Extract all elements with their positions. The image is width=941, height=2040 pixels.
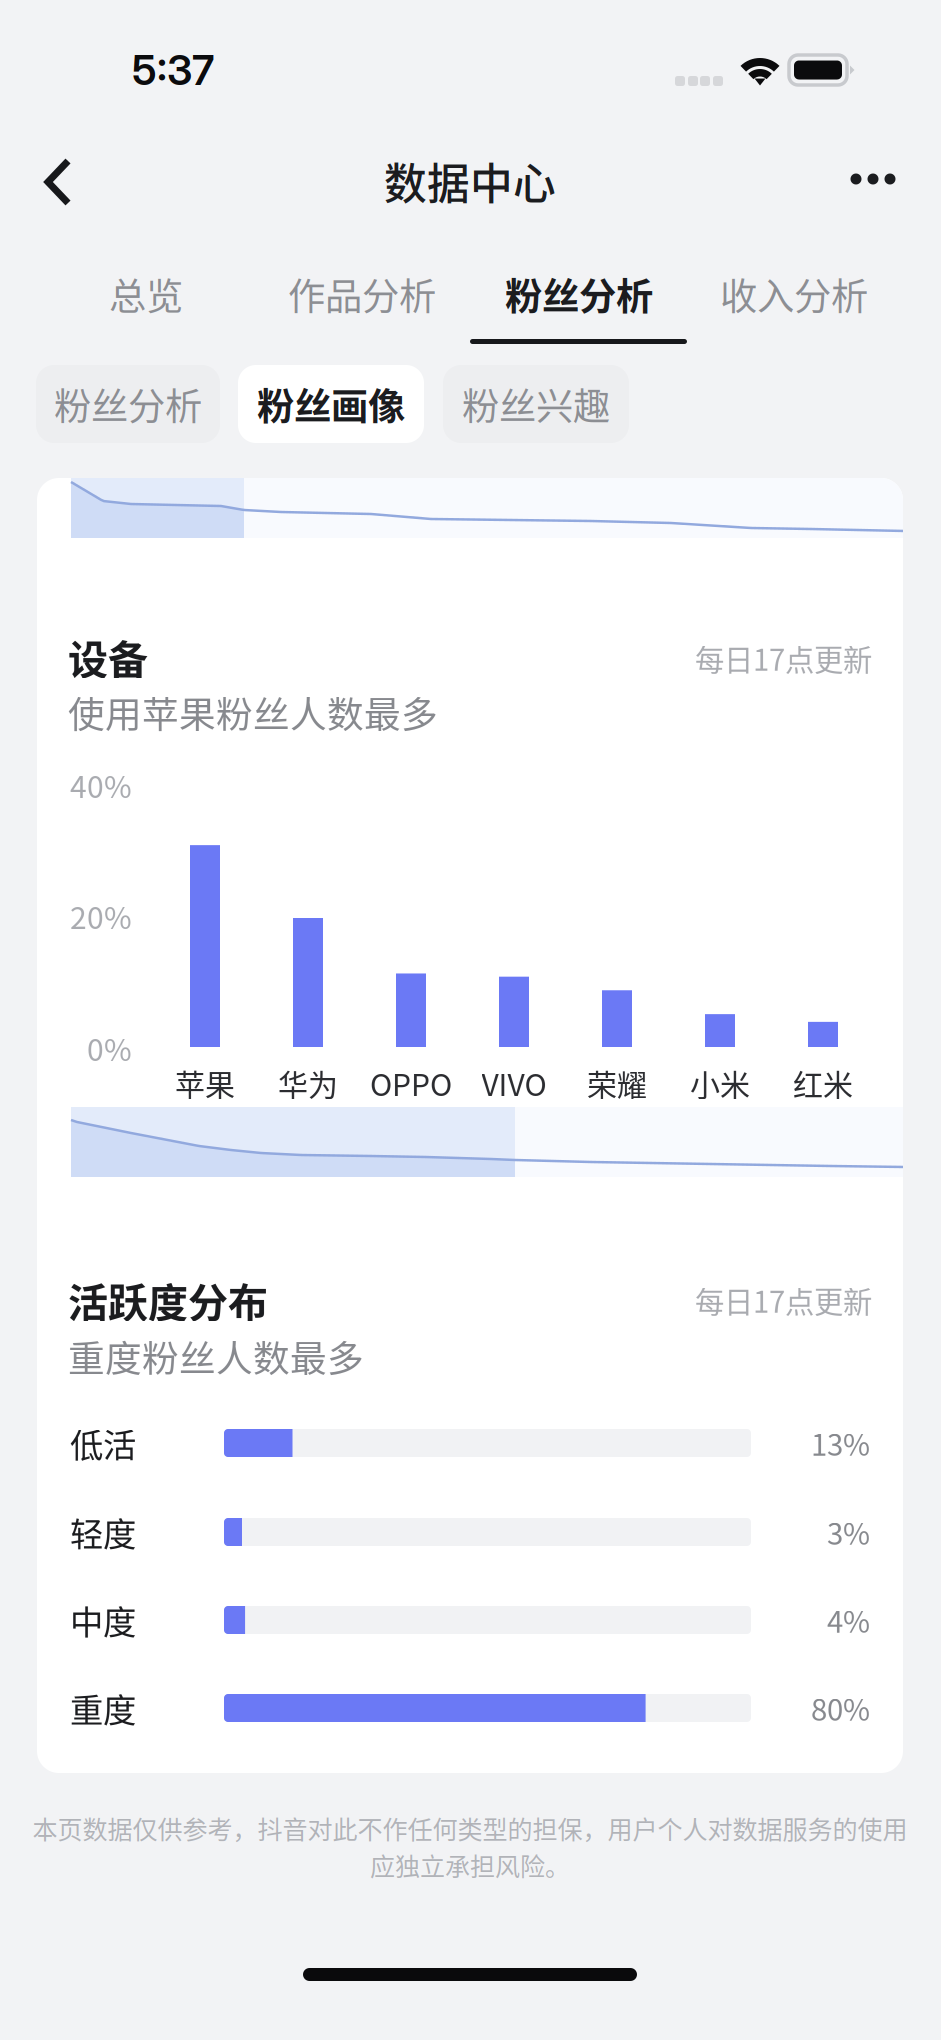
staticText: 粉丝分析 (54, 377, 202, 431)
staticText: 粉丝分析 (505, 267, 653, 321)
staticText: 苹果 (175, 1061, 235, 1105)
staticText: 数据中心 (384, 150, 556, 212)
staticText: 荣耀 (587, 1061, 647, 1105)
staticText: 3% (827, 1511, 870, 1553)
staticText: 粉丝画像 (257, 377, 405, 431)
staticText: 粉丝兴趣 (462, 377, 610, 431)
staticText: 应独立承担风险。 (370, 1847, 570, 1883)
staticText: 华为 (278, 1061, 338, 1105)
staticText: 0% (87, 1026, 132, 1070)
staticText: VIVO (481, 1061, 546, 1105)
staticText: 总览 (109, 267, 183, 321)
staticText: 40% (70, 763, 132, 807)
staticText: 使用苹果粉丝人数最多 (68, 685, 438, 739)
staticText: 4% (827, 1599, 870, 1641)
staticText: 轻度 (70, 1508, 136, 1556)
staticText: 5:37 (132, 45, 214, 95)
staticText: 13% (811, 1422, 870, 1464)
staticText: 设备 (68, 628, 148, 686)
staticText: 作品分析 (288, 267, 436, 321)
staticText: 小米 (690, 1061, 750, 1105)
staticText: 收入分析 (720, 267, 868, 321)
staticText: 中度 (70, 1596, 136, 1644)
staticText: 20% (70, 894, 132, 938)
staticText: 活跃度分布 (68, 1271, 268, 1329)
staticText: 本页数据仅供参考，抖音对此不作任何类型的担保，用户个人对数据服务的使用 (32, 1810, 907, 1846)
staticText: 红米 (793, 1061, 853, 1105)
staticText: 每日17点更新 (695, 1279, 872, 1321)
staticText: 重度 (70, 1684, 136, 1732)
staticText: 80% (811, 1687, 870, 1729)
staticText: 每日17点更新 (695, 637, 872, 679)
staticText: 重度粉丝人数最多 (68, 1329, 364, 1383)
staticText: OPPO (370, 1061, 452, 1105)
staticText: 低活 (70, 1419, 136, 1467)
